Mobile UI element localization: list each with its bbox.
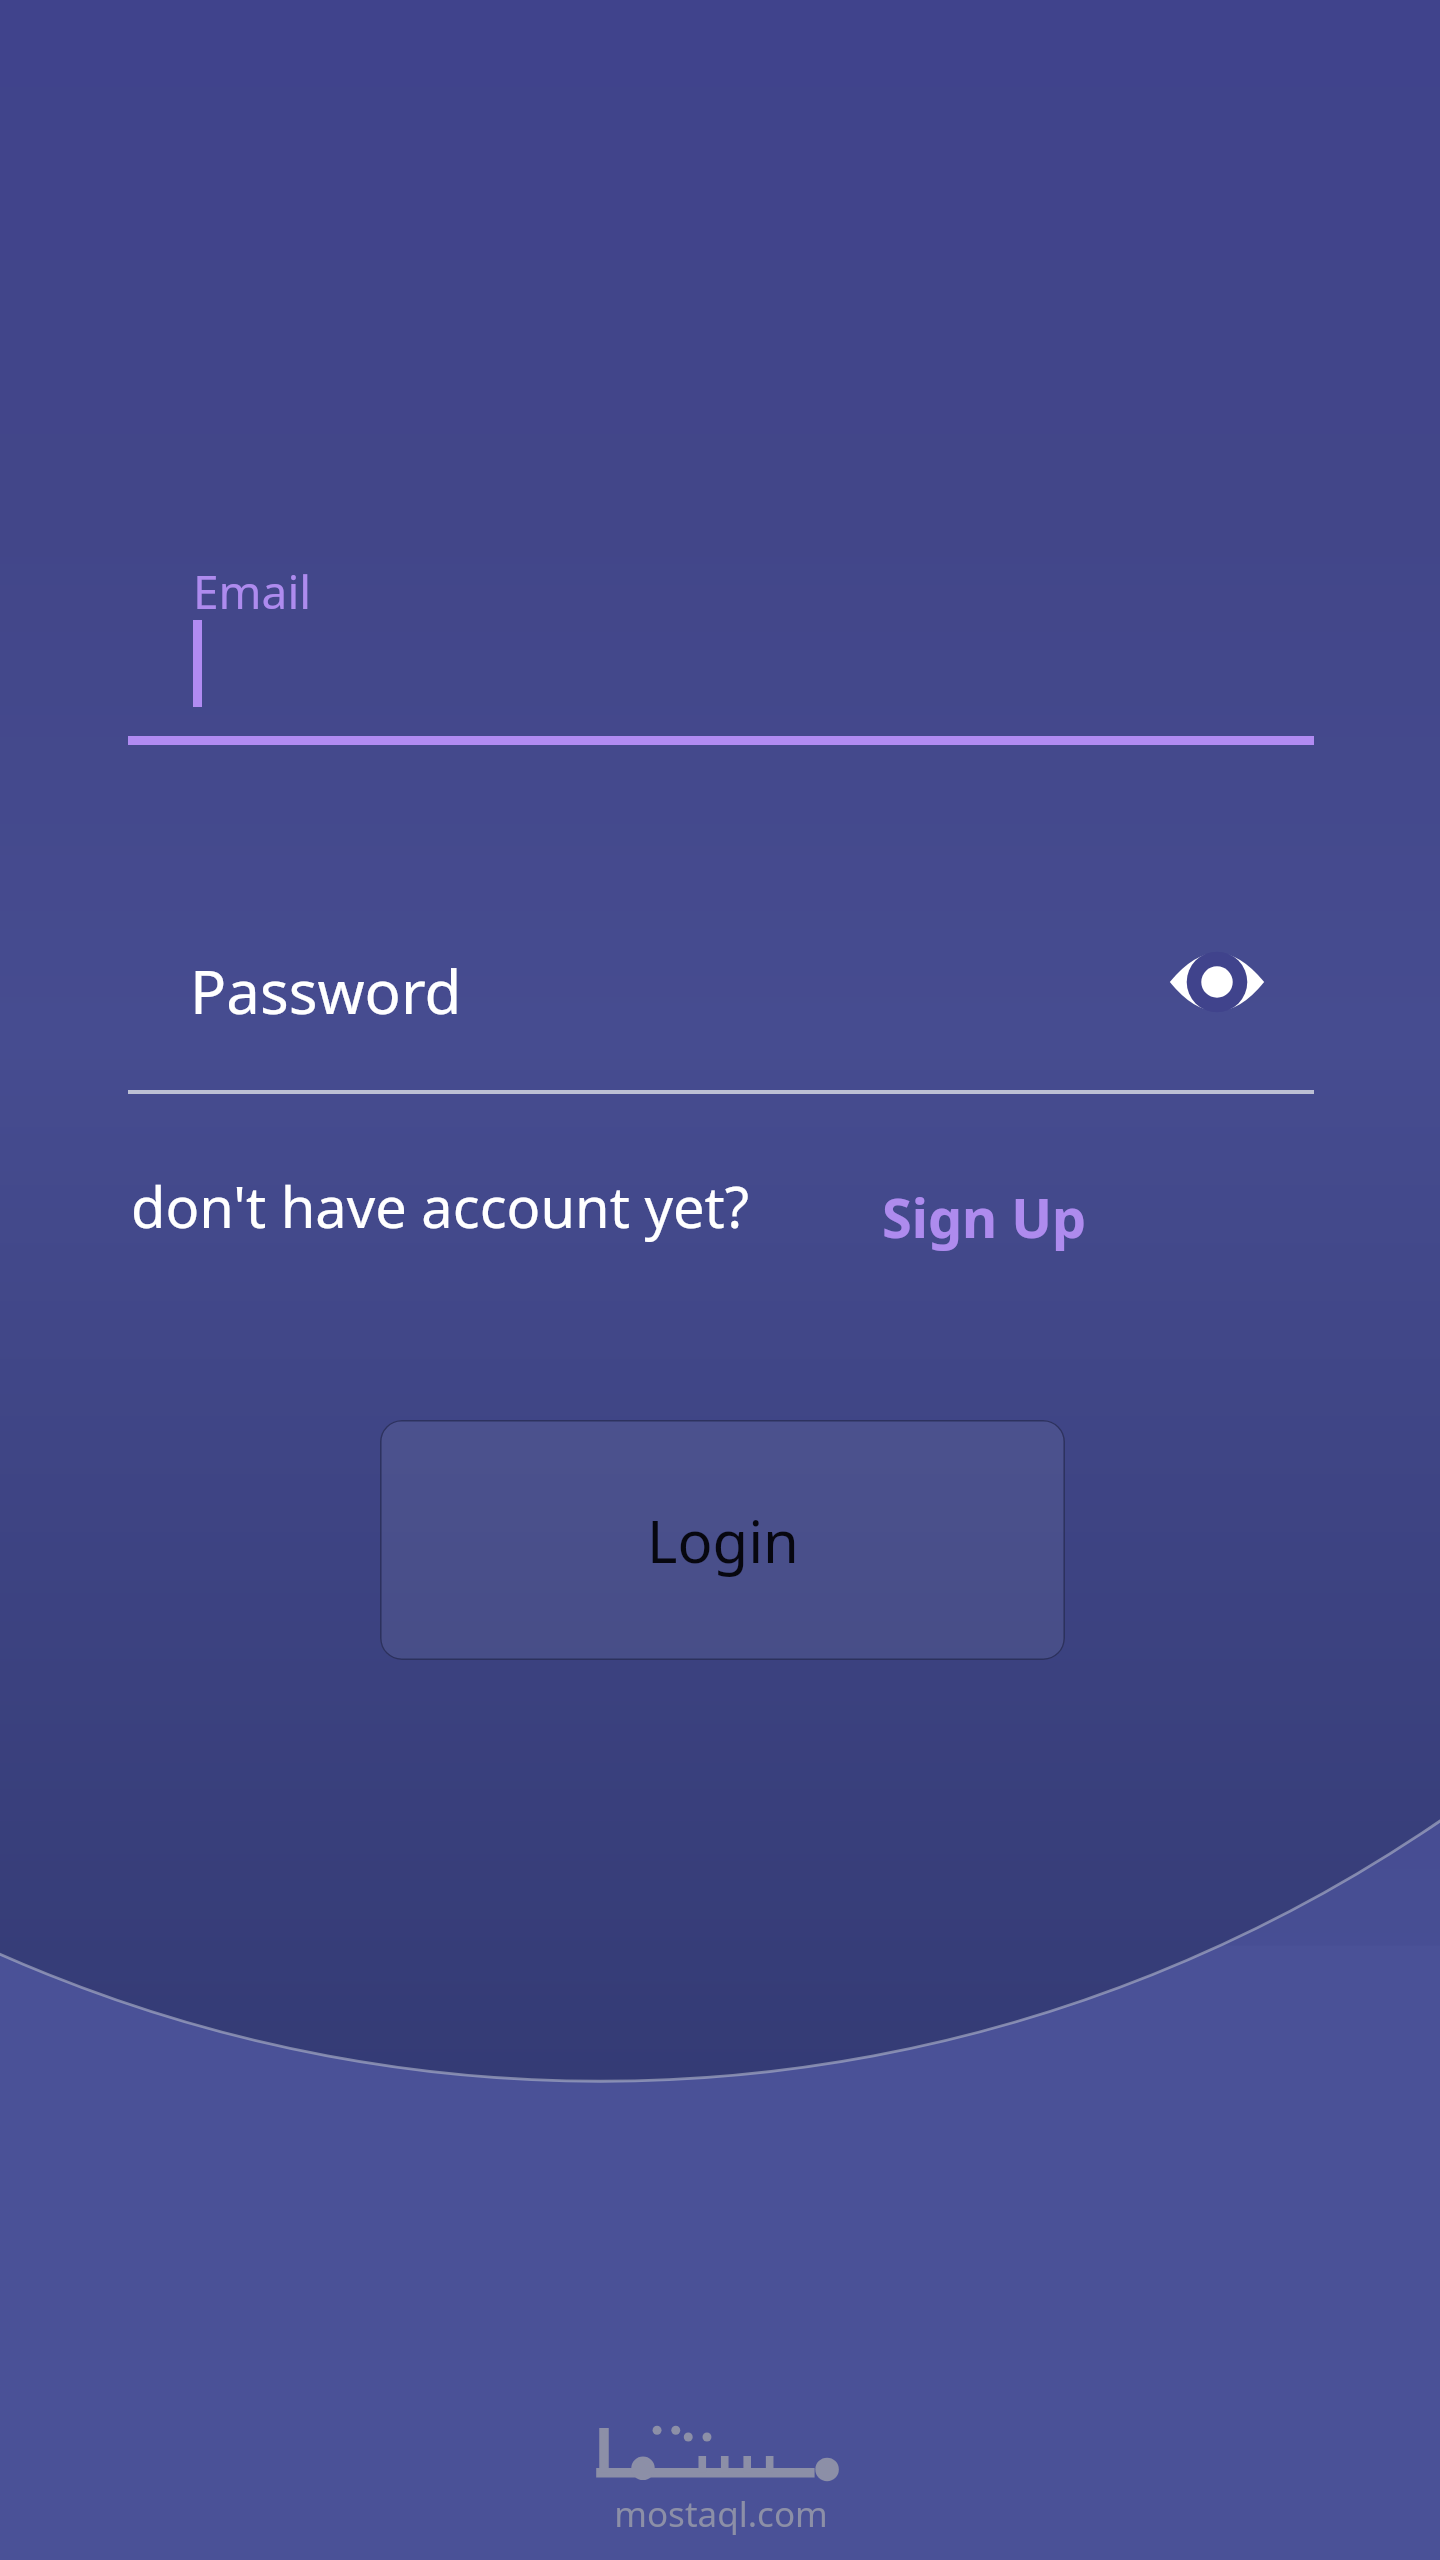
staticText: Password	[190, 950, 462, 1032]
button[interactable]: Sign Up	[882, 1180, 1087, 1254]
staticText: Login	[647, 1501, 799, 1580]
staticText: don't have account yet?	[131, 1168, 750, 1244]
staticText: mostaql.com	[565, 2490, 877, 2538]
staticText: Email	[193, 560, 312, 623]
button[interactable]: Login	[380, 1420, 1065, 1660]
button[interactable]: Show password	[1158, 930, 1276, 1034]
staticText: Sign Up	[882, 1180, 1087, 1254]
